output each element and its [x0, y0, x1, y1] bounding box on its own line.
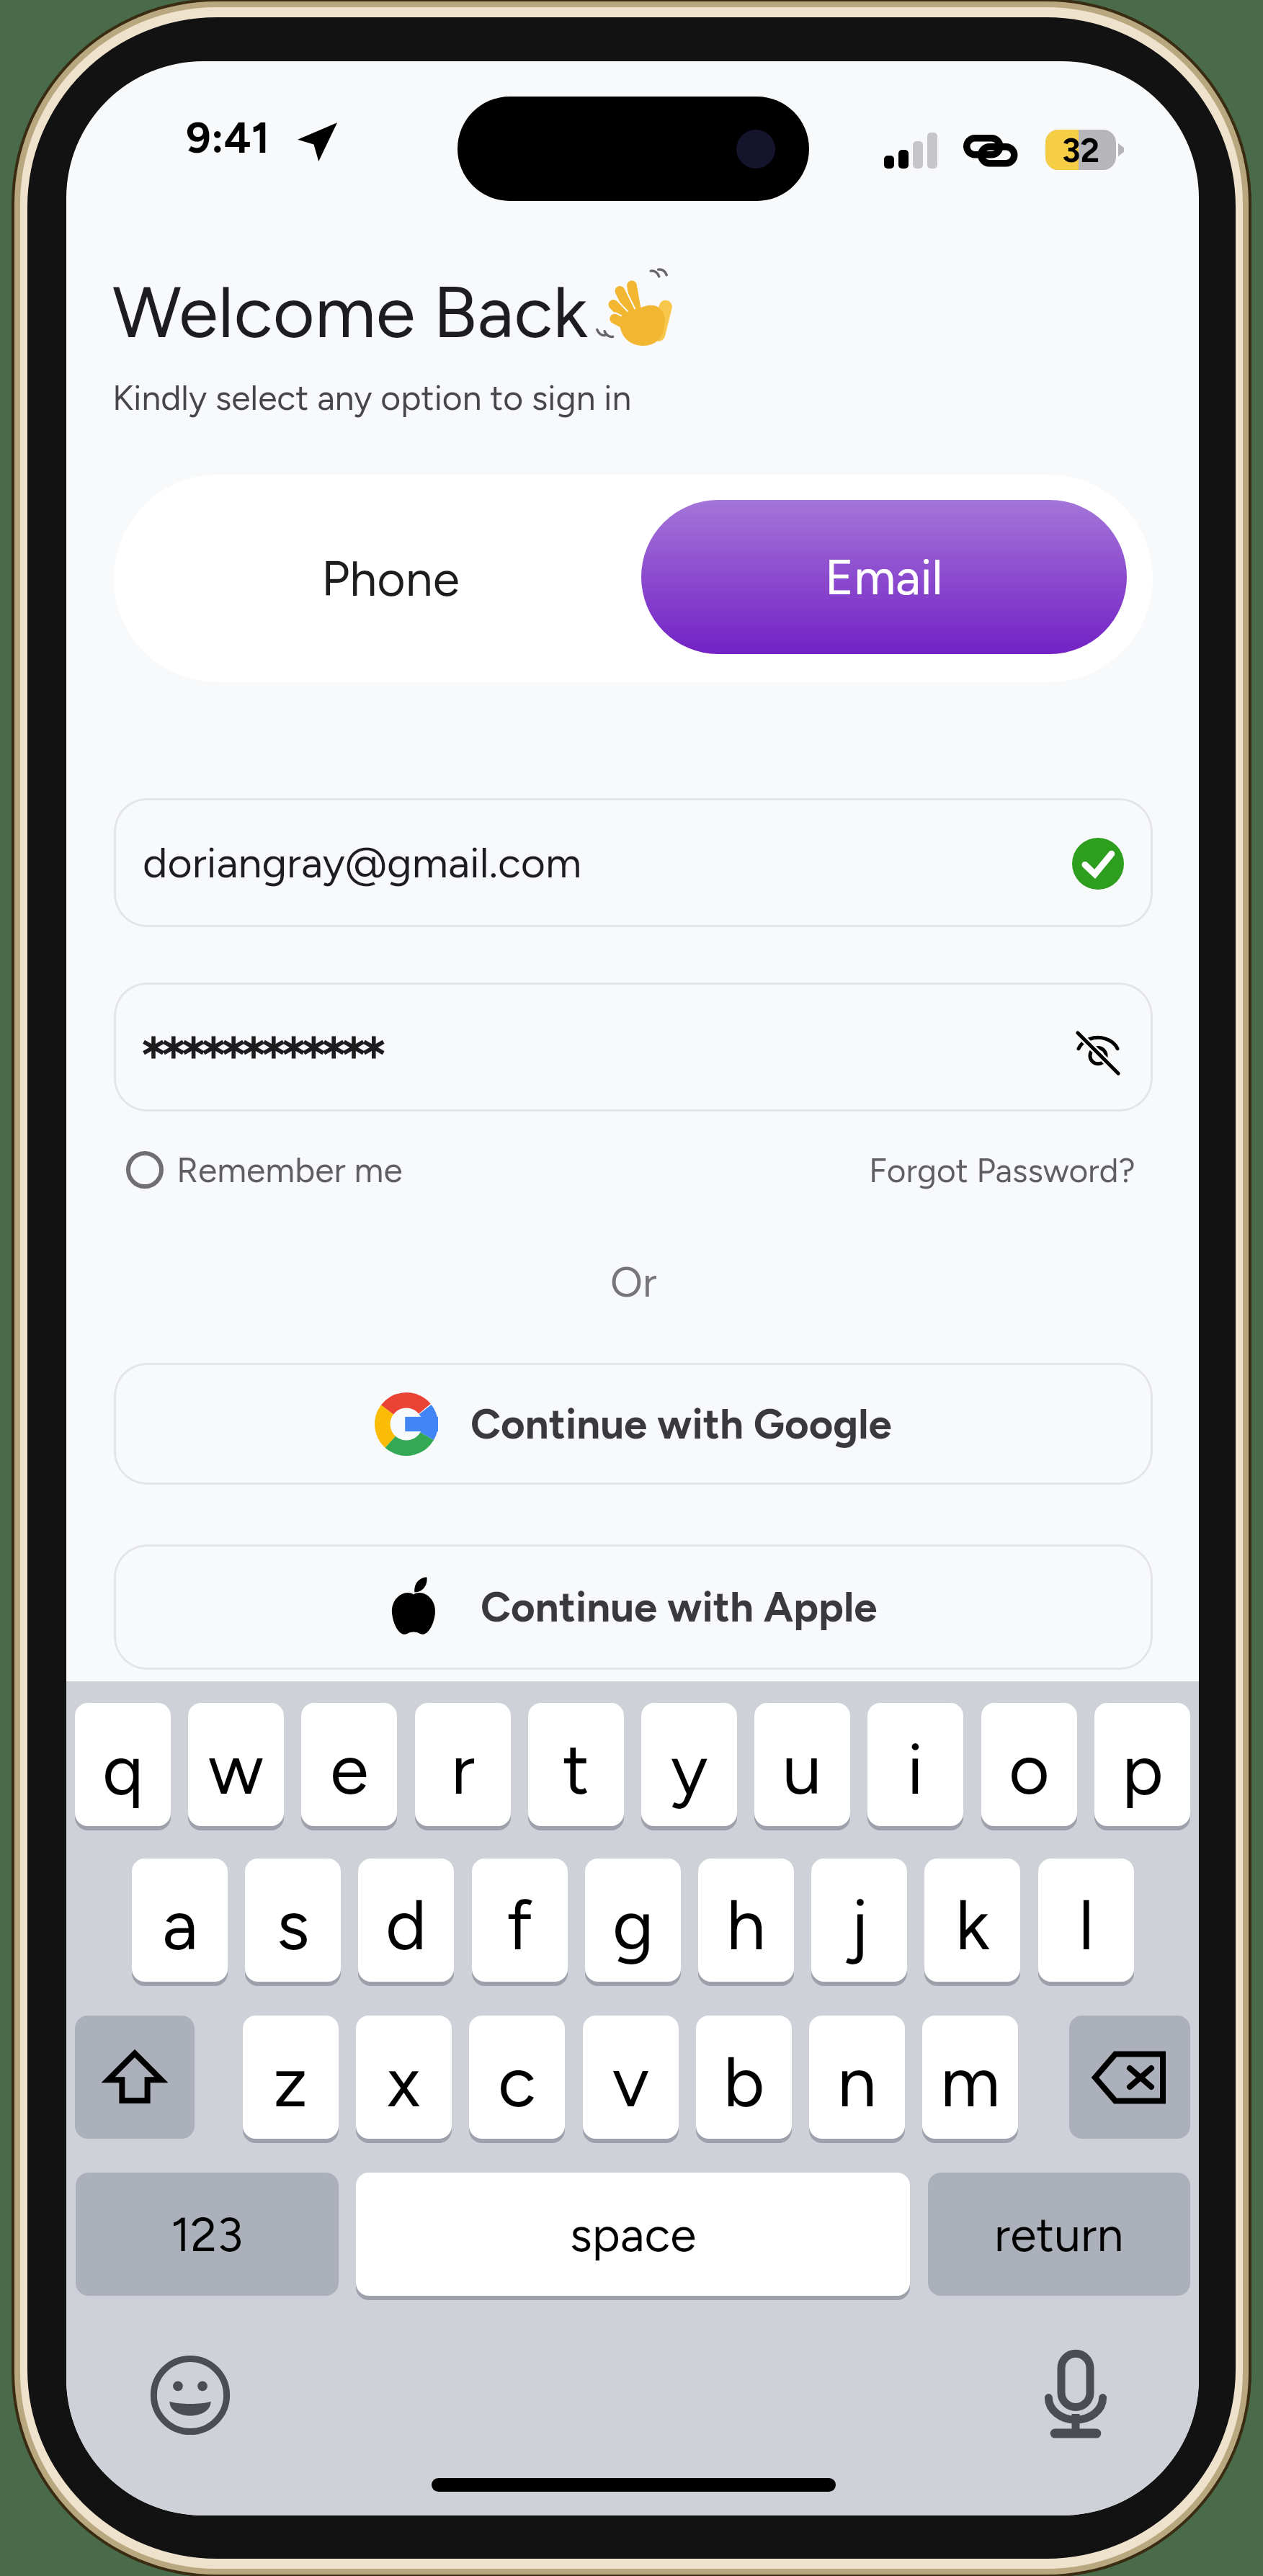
staticText: m [940, 2039, 1001, 2124]
button[interactable]: return [928, 2173, 1190, 2296]
staticText: r [451, 1727, 476, 1812]
button[interactable]: doriangray@gmail.com [114, 798, 1153, 927]
button[interactable]: Phone [114, 475, 633, 682]
button[interactable]: g [585, 1859, 681, 1982]
button[interactable]: k [924, 1859, 1020, 1982]
button[interactable]: 123 [76, 2173, 339, 2296]
button[interactable]: p [1094, 1703, 1190, 1826]
button[interactable]: i [867, 1703, 963, 1826]
button[interactable]: l [1038, 1859, 1134, 1982]
staticText: Continue with Google [470, 1399, 892, 1449]
staticText: Kindly select any option to sign in [112, 377, 632, 419]
staticText: x [387, 2039, 421, 2124]
button[interactable]: n [809, 2016, 905, 2139]
button[interactable]: d [358, 1859, 454, 1982]
staticText: Welcome Back [112, 269, 588, 355]
button[interactable]: Email [641, 500, 1127, 654]
staticText: space [570, 2206, 697, 2263]
staticText: 9:41 [186, 112, 270, 164]
staticText: y [671, 1727, 708, 1812]
button[interactable]: Forgot Password? [869, 1150, 1135, 1190]
button[interactable]: w [188, 1703, 284, 1826]
staticText: g [612, 1882, 654, 1967]
staticText: t [563, 1727, 590, 1812]
staticText: i [907, 1727, 924, 1812]
staticText: doriangray@gmail.com [143, 837, 582, 888]
button[interactable]: Remember me [114, 1149, 403, 1191]
button[interactable]: Continue with Apple [114, 1544, 1153, 1670]
button[interactable]: Continue with Google [114, 1363, 1153, 1485]
staticText: k [955, 1882, 990, 1967]
button[interactable]: Backspace [1069, 2016, 1190, 2139]
staticText: p [1122, 1727, 1164, 1812]
button[interactable]: e [301, 1703, 397, 1826]
staticText: a [162, 1882, 198, 1967]
staticText: Email [825, 547, 943, 607]
button[interactable]: Shift [75, 2016, 195, 2139]
button[interactable]: Emoji keyboard [146, 2351, 234, 2439]
staticText: j [849, 1882, 869, 1967]
button[interactable]: s [245, 1859, 341, 1982]
staticText: Or [610, 1257, 657, 1307]
staticText: Remember me [177, 1149, 403, 1191]
staticText: q [102, 1727, 143, 1812]
button[interactable]: y [641, 1703, 737, 1826]
button[interactable]: o [981, 1703, 1077, 1826]
button[interactable]: t [528, 1703, 624, 1826]
button[interactable]: q [75, 1703, 171, 1826]
staticText: w [208, 1727, 264, 1812]
button[interactable]: a [132, 1859, 228, 1982]
button[interactable]: b [696, 2016, 792, 2139]
staticText: v [612, 2039, 649, 2124]
button[interactable]: v [583, 2016, 679, 2139]
staticText: u [782, 1727, 822, 1812]
button[interactable]: j [811, 1859, 907, 1982]
button[interactable]: z [243, 2016, 339, 2139]
staticText: n [837, 2039, 877, 2124]
staticText: h [726, 1882, 766, 1967]
staticText: f [506, 1882, 533, 1967]
button[interactable]: m [922, 2016, 1018, 2139]
button[interactable]: h [698, 1859, 794, 1982]
staticText: return [994, 2206, 1124, 2263]
button[interactable]: x [356, 2016, 452, 2139]
staticText: o [1009, 1727, 1050, 1812]
staticText: b [723, 2039, 765, 2124]
button[interactable]: c [469, 2016, 565, 2139]
staticText: Continue with Apple [481, 1582, 878, 1632]
staticText: 123 [171, 2206, 244, 2263]
staticText: e [330, 1727, 369, 1812]
button[interactable]: r [415, 1703, 511, 1826]
button[interactable]: Dictation [1032, 2351, 1120, 2439]
button[interactable]: f [472, 1859, 568, 1982]
button[interactable]: Show password [1062, 1017, 1134, 1089]
staticText: Forgot Password? [869, 1150, 1135, 1190]
button[interactable]: u [754, 1703, 850, 1826]
staticText: s [277, 1882, 310, 1967]
staticText: z [273, 2039, 308, 2124]
staticText: c [498, 2039, 537, 2124]
staticText: Phone [321, 549, 460, 608]
staticText: d [385, 1882, 427, 1967]
button[interactable]: Show password [114, 983, 1153, 1112]
staticText: l [1079, 1882, 1094, 1967]
button[interactable]: space [356, 2173, 910, 2296]
staticText: 32 [1062, 130, 1100, 170]
